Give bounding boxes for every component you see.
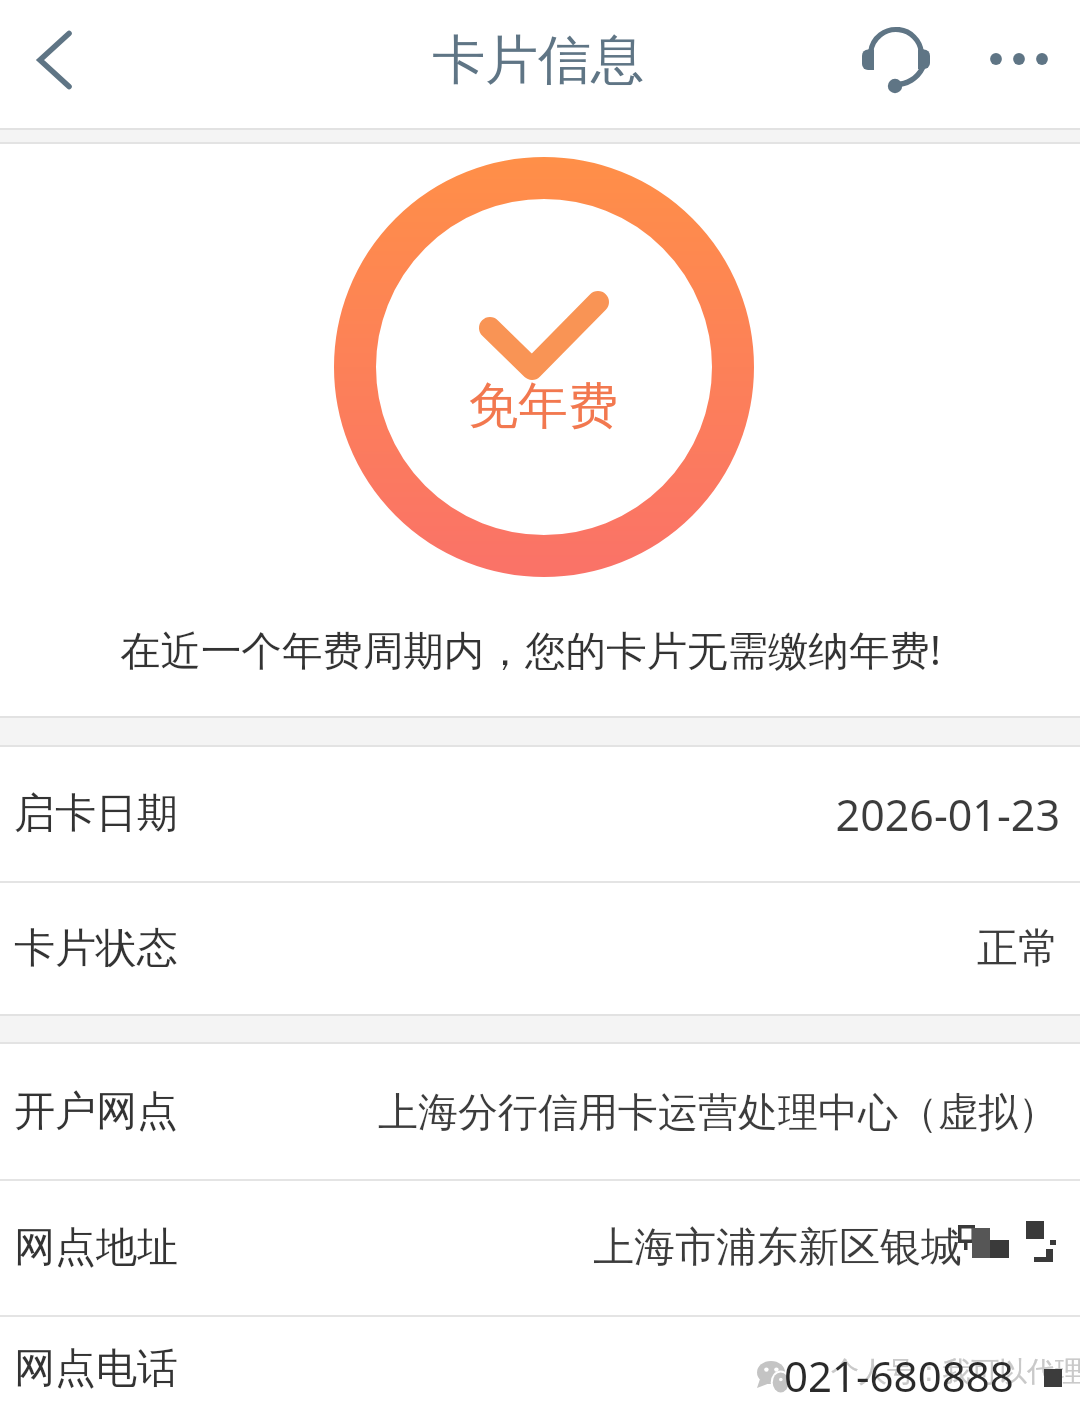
staticText: 开户网点 [14, 1086, 178, 1138]
staticText: 启卡日期 [14, 788, 178, 840]
staticText: 上海分行信用卡运营处理中心（虚拟） [378, 1087, 1058, 1137]
button[interactable]: Customer service [846, 0, 946, 128]
staticText: 网点电话 [14, 1343, 178, 1395]
staticText: 个人号：我可以代理 [831, 1354, 1080, 1389]
button[interactable]: 网点地址 [0, 1181, 1080, 1315]
button[interactable]: Back [0, 0, 118, 128]
button[interactable]: 卡片状态 [0, 883, 1080, 1014]
staticText: 2026-01-23 [835, 785, 1060, 844]
staticText: 正常 [977, 923, 1059, 975]
staticText: 021-680888 [784, 1347, 1014, 1404]
staticText: 卡片信息 [432, 27, 644, 94]
button[interactable]: More options [966, 0, 1070, 128]
button[interactable]: 开户网点 [0, 1044, 1080, 1179]
staticText: 网点地址 [14, 1222, 178, 1274]
button[interactable]: 网点电话 [0, 1317, 1080, 1421]
staticText: 上海市浦东新区银城 [593, 1222, 962, 1274]
button[interactable]: 启卡日期 [0, 747, 1080, 881]
staticText: 在近一个年费周期内，您的卡片无需缴纳年费! [120, 622, 941, 677]
staticText: 免年费 [468, 375, 618, 438]
staticText: 卡片状态 [14, 923, 178, 975]
